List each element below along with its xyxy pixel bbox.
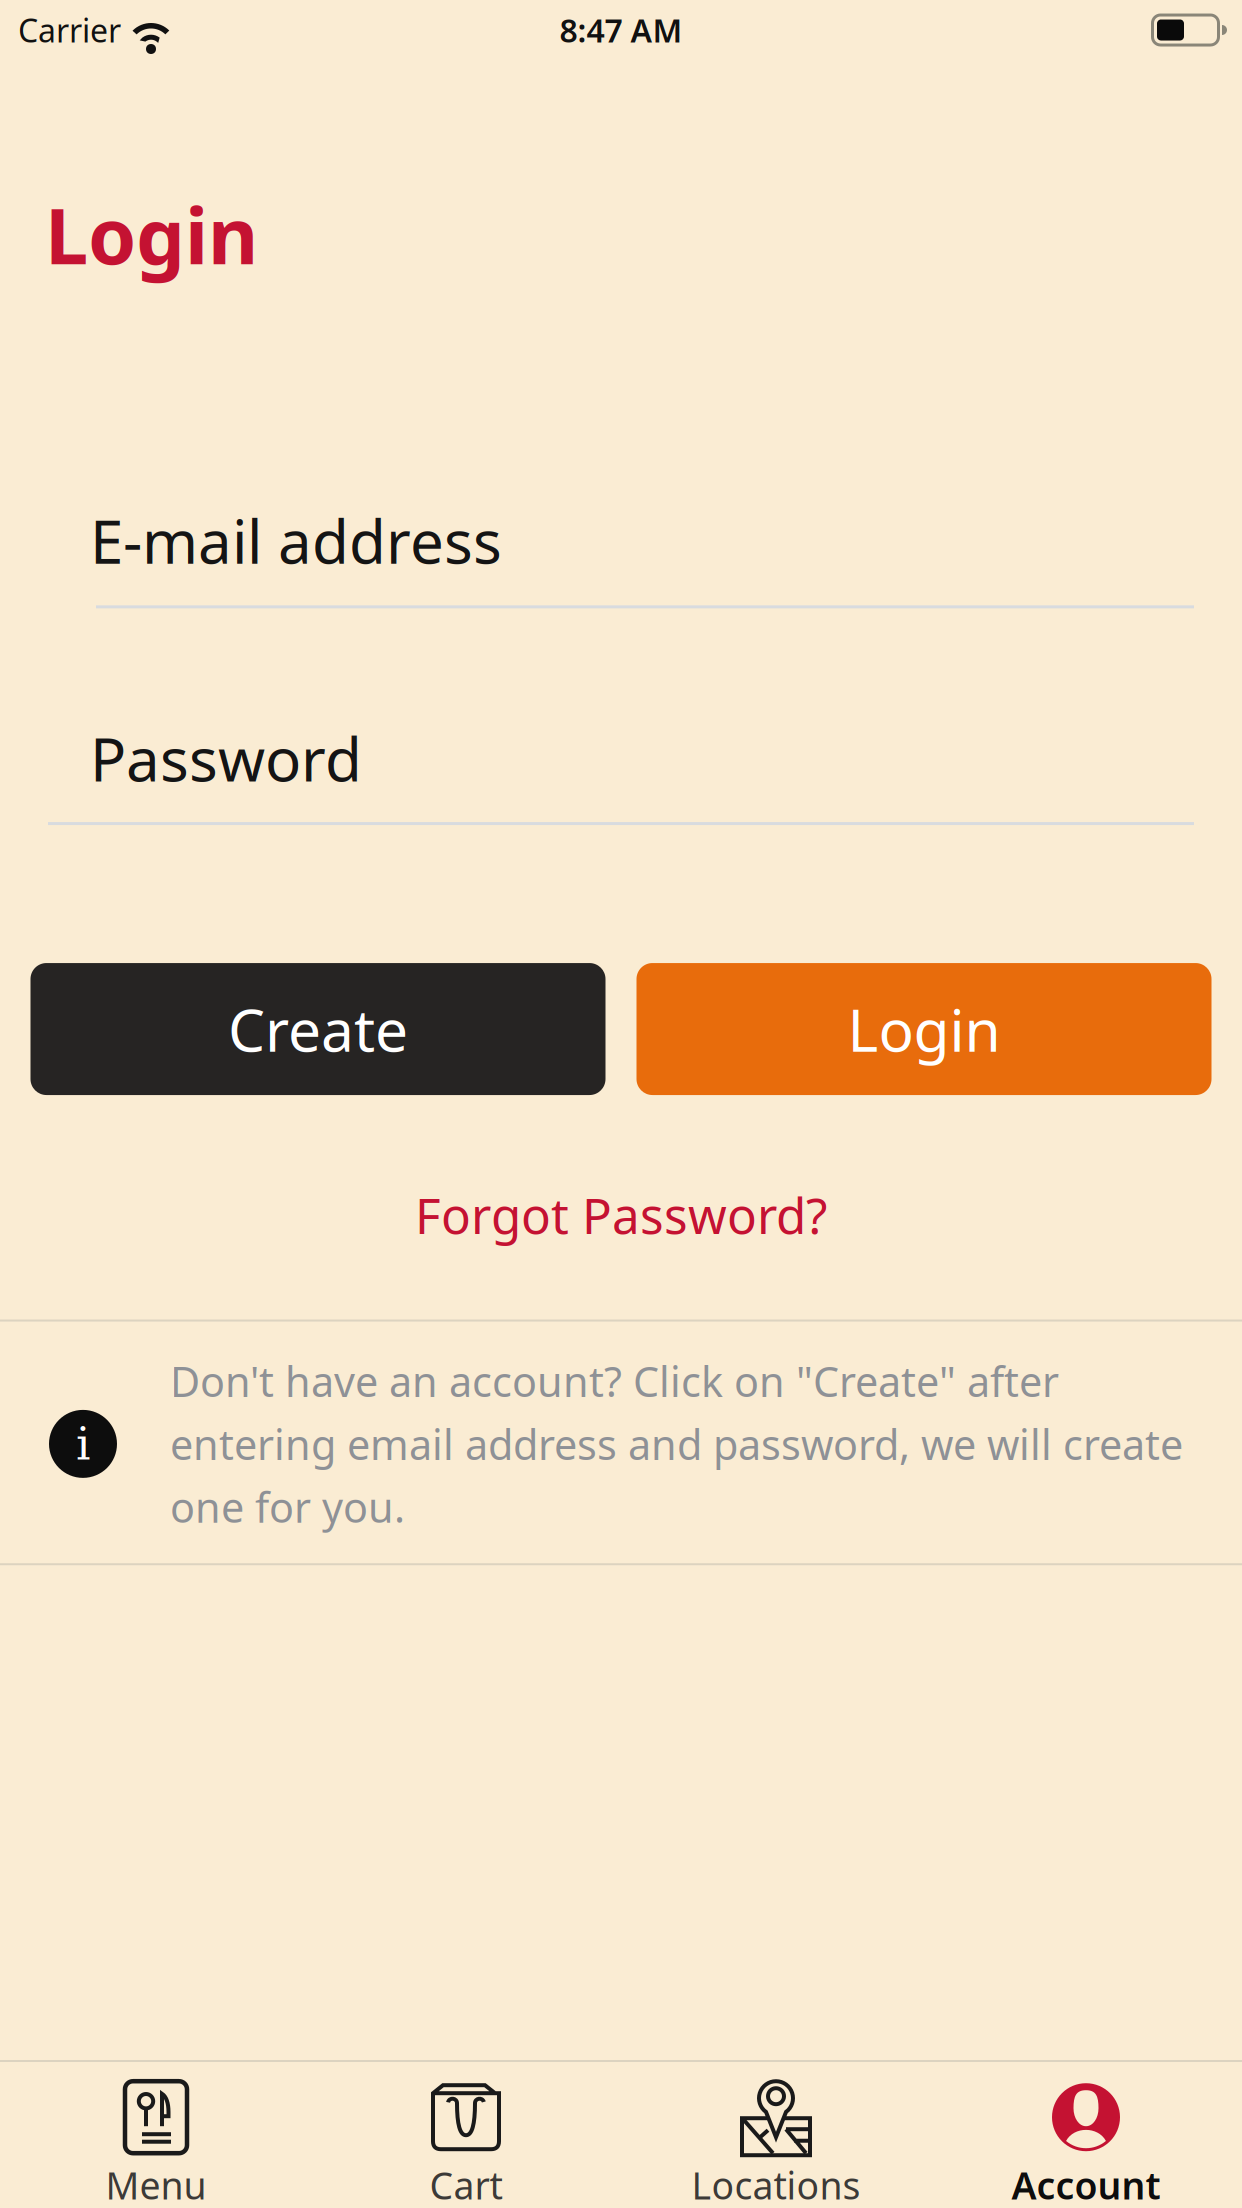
- button[interactable]: Cart: [311, 2068, 621, 2208]
- staticText: Forgot Password?: [415, 1182, 827, 1247]
- button[interactable]: Account: [931, 2068, 1241, 2208]
- button[interactable]: Login: [636, 963, 1211, 1095]
- button[interactable]: E-mail address: [0, 501, 1242, 608]
- button[interactable]: Forgot Password?: [415, 1182, 827, 1247]
- staticText: 8:47 AM: [559, 9, 682, 51]
- staticText: Don't have an account? Click on "Create"…: [170, 1354, 1059, 1408]
- staticText: Menu: [105, 2160, 206, 2208]
- button[interactable]: Password: [0, 718, 1242, 825]
- staticText: i: [76, 1417, 90, 1470]
- staticText: entering email address and password, we …: [170, 1416, 1183, 1471]
- staticText: Carrier: [18, 9, 121, 51]
- staticText: E-mail address: [90, 501, 502, 580]
- staticText: Cart: [429, 2160, 502, 2208]
- button[interactable]: Menu: [1, 2068, 311, 2208]
- staticText: one for you.: [170, 1479, 405, 1534]
- staticText: Login: [847, 990, 1000, 1068]
- staticText: Password: [90, 718, 362, 798]
- staticText: Locations: [691, 2160, 860, 2208]
- button[interactable]: Locations: [621, 2068, 931, 2208]
- staticText: Account: [1011, 2160, 1160, 2208]
- staticText: Login: [45, 183, 258, 286]
- staticText: Create: [228, 990, 408, 1068]
- button[interactable]: Create: [30, 963, 605, 1095]
